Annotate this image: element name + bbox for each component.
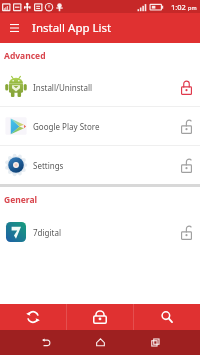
button[interactable]: Settings xyxy=(0,146,200,184)
staticText: Advanced xyxy=(4,50,46,62)
staticText: Install/Uninstall xyxy=(33,82,93,93)
button[interactable]: Open navigation menu xyxy=(0,14,28,42)
staticText: Settings xyxy=(33,160,64,171)
staticText: 1:02 xyxy=(171,2,186,12)
staticText: Install App List xyxy=(32,20,112,36)
button[interactable]: Search xyxy=(134,304,200,330)
button[interactable]: 7digital xyxy=(0,213,200,251)
button[interactable]: Lock all xyxy=(67,304,133,330)
button[interactable]: Back xyxy=(18,330,73,355)
staticText: Google Play Store xyxy=(33,121,100,132)
staticText: pm xyxy=(188,4,197,11)
button[interactable]: Refresh xyxy=(0,304,66,330)
staticText: General xyxy=(4,194,38,206)
button[interactable]: Unlocked xyxy=(173,219,199,245)
button[interactable]: Recents xyxy=(128,330,183,355)
button[interactable]: Unlocked xyxy=(173,113,199,139)
staticText: 7digital xyxy=(33,227,61,238)
button[interactable]: Home xyxy=(73,330,128,355)
button[interactable]: Install/Uninstall xyxy=(0,68,200,106)
button[interactable]: Unlocked xyxy=(173,152,199,178)
button[interactable]: Google Play Store xyxy=(0,107,200,145)
button[interactable]: Locked xyxy=(173,74,199,100)
